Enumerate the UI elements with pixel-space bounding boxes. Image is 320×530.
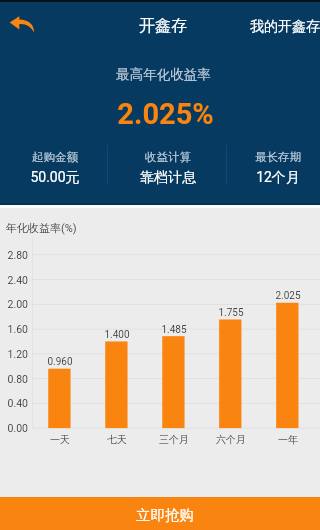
staticText: 50.00元: [30, 169, 80, 187]
staticText: 七天: [87, 433, 147, 446]
staticText: 一年: [258, 433, 318, 446]
button[interactable]: 最长存期: [238, 150, 318, 187]
staticText: 1.60: [0, 323, 28, 335]
staticText: 0.80: [0, 373, 28, 385]
staticText: 三个月: [144, 433, 204, 446]
staticText: 2.00: [0, 298, 28, 310]
staticText: 最长存期: [255, 150, 301, 164]
staticText: 1.755: [206, 307, 256, 319]
staticText: 2.80: [0, 249, 28, 261]
staticText: 0.40: [0, 397, 28, 409]
staticText: 2.40: [0, 274, 28, 286]
staticText: 0.960: [35, 356, 85, 368]
staticText: 2.025: [263, 290, 313, 302]
button[interactable]: 起购金额: [15, 150, 95, 187]
staticText: 年化收益率(%): [6, 221, 77, 235]
staticText: 1.20: [0, 348, 28, 360]
staticText: 1.400: [92, 329, 142, 341]
staticText: 立即抢购: [136, 506, 194, 524]
staticText: 开鑫存: [139, 16, 187, 36]
staticText: 最高年化收益率: [116, 66, 211, 83]
button[interactable]: 立即抢购: [0, 497, 320, 530]
staticText: 靠档计息: [140, 169, 196, 187]
staticText: 1.485: [149, 324, 199, 336]
staticText: 一天: [30, 433, 90, 446]
staticText: 我的开鑫存: [250, 18, 320, 36]
button[interactable]: Back: [6, 12, 40, 36]
button[interactable]: 收益计算: [128, 150, 208, 187]
staticText: 2.025%: [117, 97, 214, 131]
staticText: 0.00: [0, 422, 28, 434]
staticText: 12个月: [256, 169, 300, 187]
button[interactable]: 开鑫存: [139, 16, 187, 36]
staticText: 收益计算: [145, 150, 191, 164]
staticText: 起购金额: [32, 150, 78, 164]
button[interactable]: 我的开鑫存: [250, 18, 320, 36]
staticText: 六个月: [201, 433, 261, 446]
